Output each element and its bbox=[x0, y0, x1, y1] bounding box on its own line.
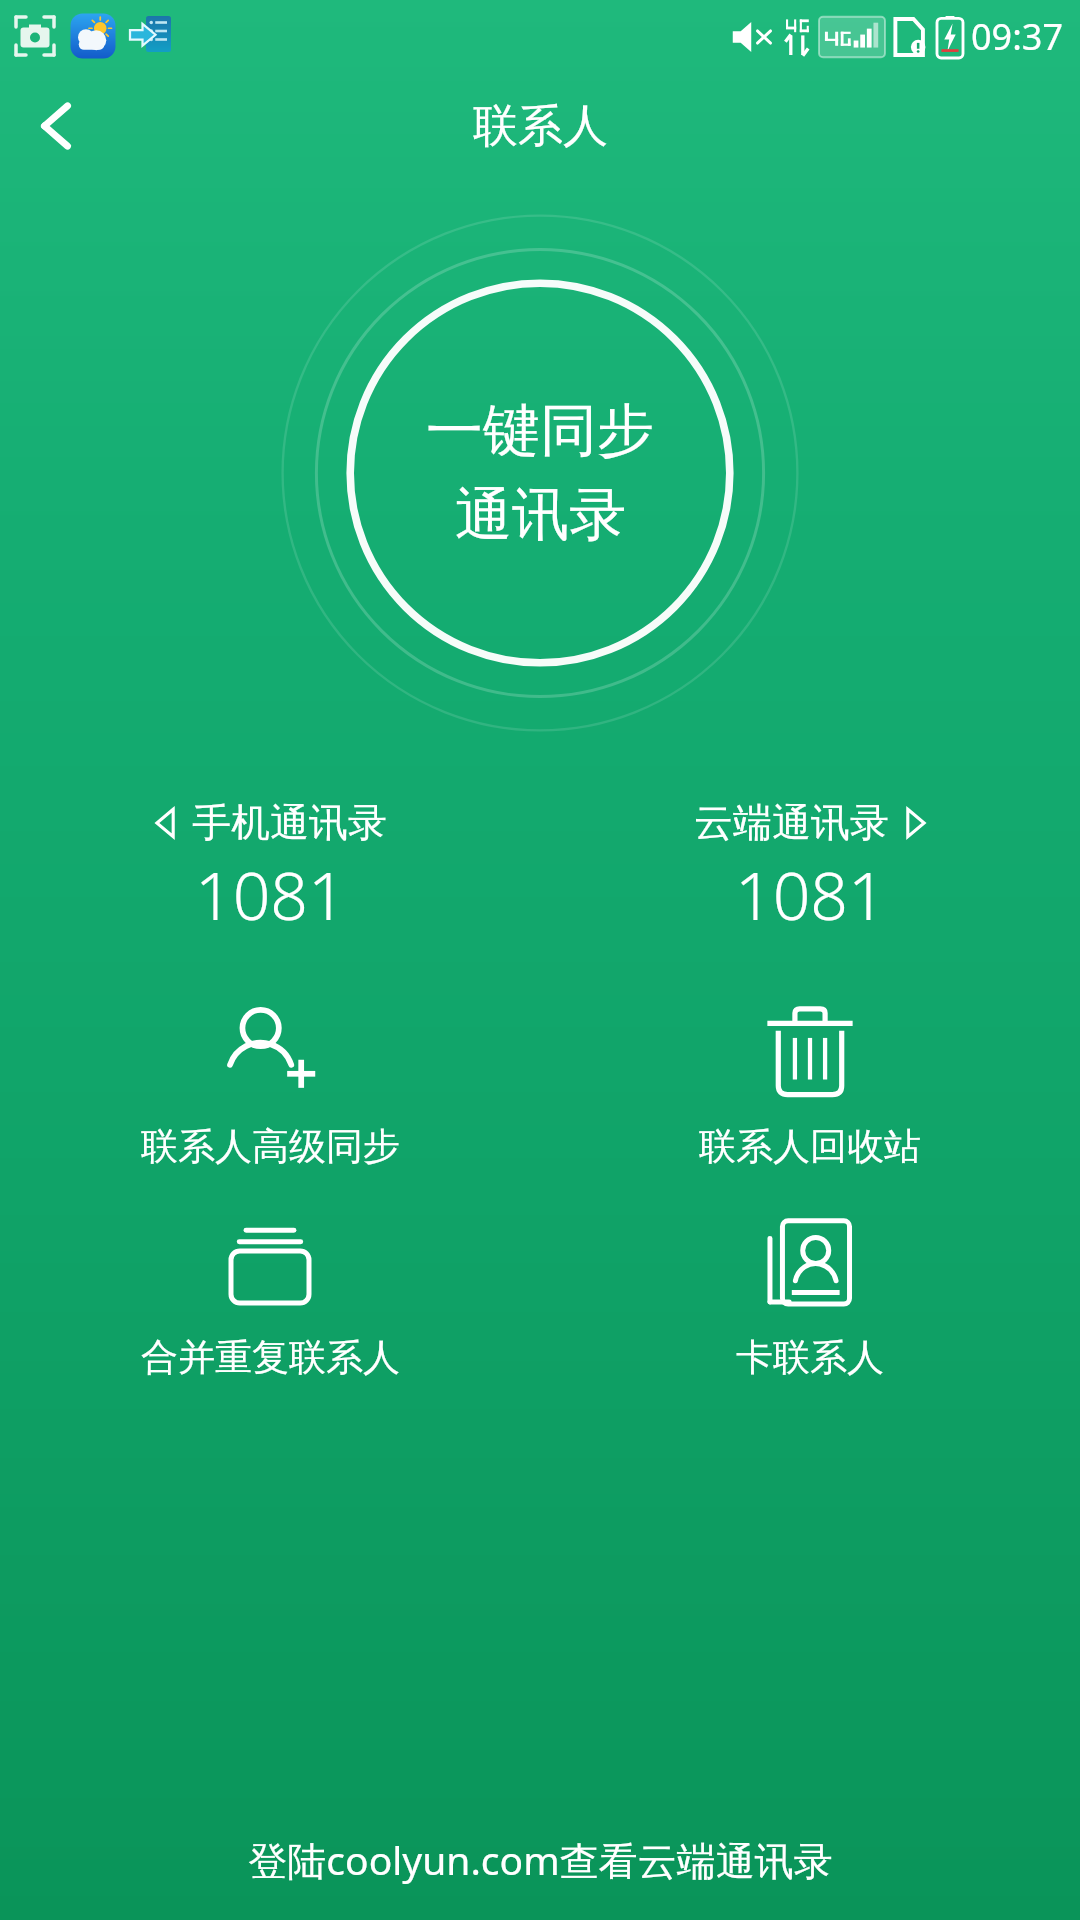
staticText: 手机通讯录 bbox=[192, 798, 387, 847]
button[interactable]: 登陆coolyun.com查看云端通讯录 bbox=[0, 1825, 1080, 1894]
button[interactable]: 卡联系人 bbox=[540, 1208, 1080, 1385]
staticText: 09:37 bbox=[971, 12, 1064, 61]
staticText: 1081 bbox=[735, 849, 886, 939]
button[interactable]: 一键同步 bbox=[280, 213, 800, 733]
staticText: 卡联系人 bbox=[736, 1334, 884, 1381]
button[interactable]: 云端通讯录 bbox=[540, 796, 1080, 941]
staticText: 云端通讯录 bbox=[694, 798, 889, 847]
staticText: 1081 bbox=[195, 849, 346, 939]
staticText: 一键同步 bbox=[426, 395, 654, 467]
staticText: 联系人回收站 bbox=[699, 1123, 921, 1170]
button[interactable]: 联系人高级同步 bbox=[0, 997, 540, 1174]
button[interactable]: Back bbox=[0, 72, 112, 180]
button[interactable]: 手机通讯录 bbox=[0, 796, 540, 941]
button[interactable]: 合并重复联系人 bbox=[0, 1208, 540, 1385]
button[interactable]: 联系人回收站 bbox=[540, 997, 1080, 1174]
staticText: 联系人 bbox=[473, 98, 608, 155]
staticText: 合并重复联系人 bbox=[141, 1334, 400, 1381]
staticText: 联系人高级同步 bbox=[141, 1123, 400, 1170]
staticText: 通讯录 bbox=[455, 479, 626, 551]
staticText: 登陆coolyun.com查看云端通讯录 bbox=[248, 1833, 833, 1886]
